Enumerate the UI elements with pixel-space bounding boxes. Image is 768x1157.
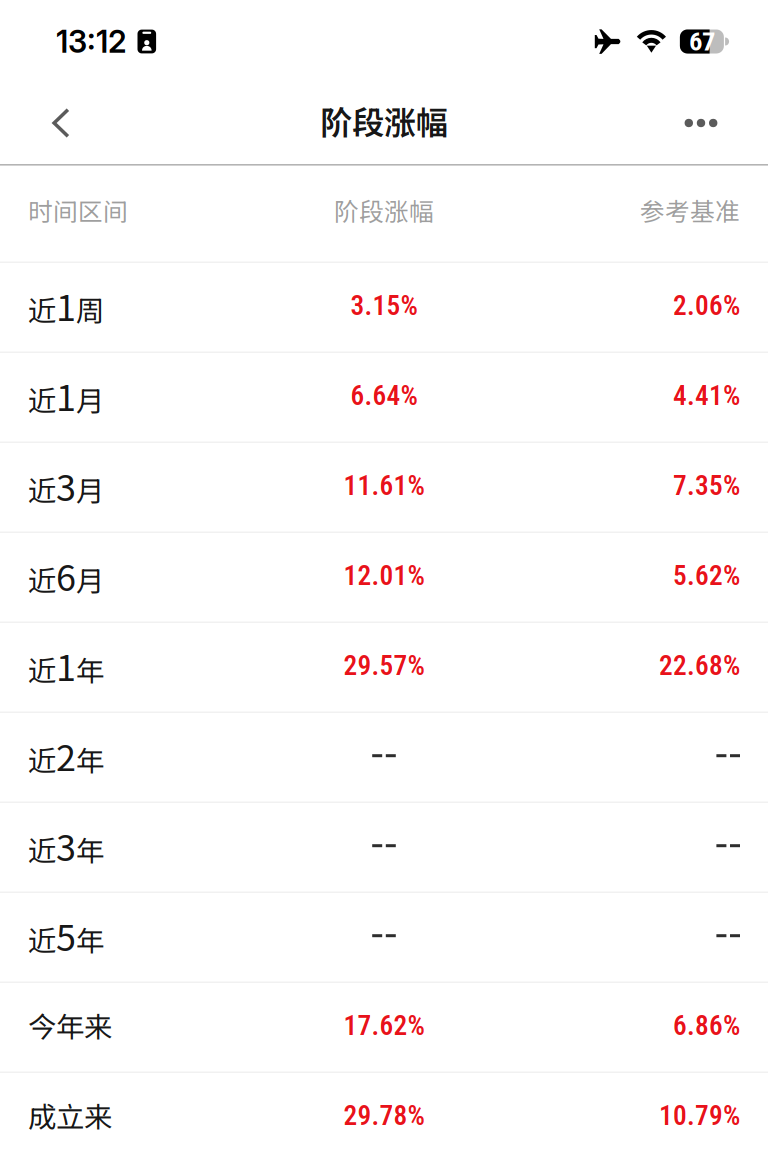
staticText: 12.01%	[343, 560, 424, 592]
staticText: 近2年	[28, 730, 104, 781]
staticText: 近1年	[28, 640, 104, 691]
staticText: 5.62%	[673, 560, 740, 592]
staticText: 时间区间	[28, 192, 128, 228]
button[interactable]: 更多	[663, 82, 739, 164]
staticText: 7.35%	[673, 470, 740, 502]
button[interactable]: 近3年	[0, 803, 768, 892]
button[interactable]: 返回	[23, 82, 99, 164]
staticText: 17.62%	[343, 1010, 424, 1042]
staticText: 29.57%	[343, 650, 424, 682]
button[interactable]: 近1年	[0, 623, 768, 712]
button[interactable]: 近5年	[0, 893, 768, 982]
button[interactable]: 近6月	[0, 533, 768, 622]
button[interactable]: 近2年	[0, 713, 768, 802]
staticText: 近1月	[28, 370, 104, 421]
button[interactable]: 今年来	[0, 983, 768, 1072]
staticText: 67	[689, 26, 715, 57]
staticText: 近6月	[28, 550, 104, 601]
staticText: 6.64%	[350, 380, 417, 412]
staticText: 阶段涨幅	[334, 192, 434, 228]
staticText: 近1周	[28, 280, 104, 331]
staticText: 近3月	[28, 460, 104, 511]
button[interactable]: 成立来	[0, 1073, 768, 1157]
staticText: 6.86%	[673, 1010, 740, 1042]
staticText: 22.68%	[659, 650, 740, 682]
staticText: 近5年	[28, 910, 104, 961]
staticText: 3.15%	[350, 290, 417, 322]
staticText: 10.79%	[659, 1100, 740, 1132]
staticText: 近3年	[28, 820, 104, 871]
staticText: 2.06%	[673, 290, 740, 322]
staticText: 4.41%	[673, 380, 740, 412]
staticText: 11.61%	[343, 470, 424, 502]
staticText: 今年来	[28, 1005, 112, 1045]
staticText: 成立来	[28, 1095, 112, 1135]
button[interactable]: 近1月	[0, 353, 768, 442]
staticText: 29.78%	[343, 1100, 424, 1132]
button[interactable]: 近1周	[0, 263, 768, 352]
staticText: 阶段涨幅	[320, 97, 448, 144]
staticText: 13:12	[56, 23, 127, 60]
staticText: 参考基准	[640, 192, 740, 228]
button[interactable]: 近3月	[0, 443, 768, 532]
